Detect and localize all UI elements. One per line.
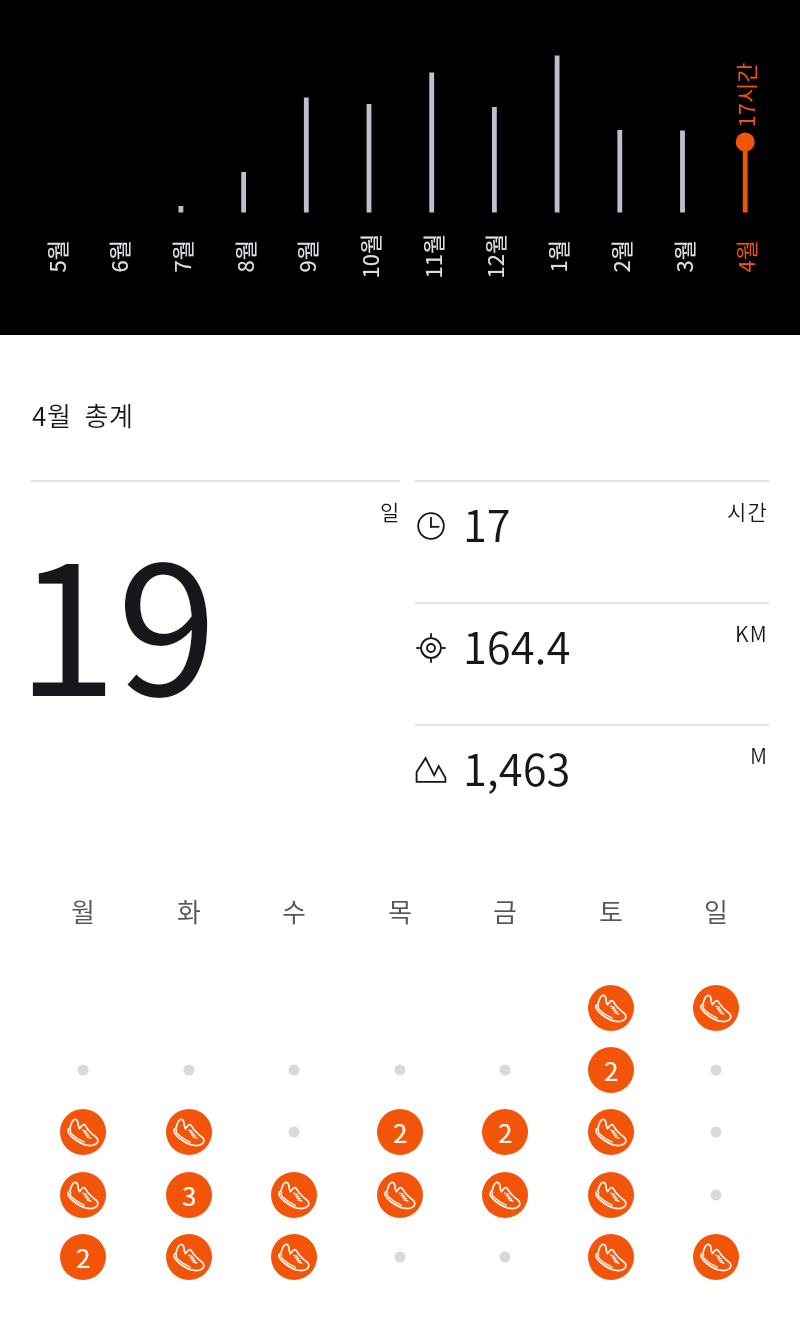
staticText: 164.4 (463, 614, 571, 676)
staticText: 2 (76, 1238, 91, 1276)
staticText: 일 (704, 892, 728, 930)
button[interactable]: 4월 총계 (18, 388, 148, 442)
staticText: 4월 총계 (32, 396, 134, 434)
button[interactable]: 1 activity (585, 982, 637, 1034)
staticText: 토 (599, 892, 623, 930)
staticText: 금 (493, 892, 517, 930)
button[interactable]: 1 activity (57, 1106, 109, 1158)
button[interactable]: 화 (157, 886, 221, 936)
button[interactable]: 1 activity (479, 1169, 531, 1221)
button[interactable]: 1 activity (163, 1106, 215, 1158)
staticText: 2 (393, 1113, 408, 1151)
button[interactable]: Rest day (374, 1044, 426, 1096)
button[interactable]: 1 activity (268, 1231, 320, 1283)
button[interactable]: 1 activity (57, 1169, 109, 1221)
staticText: 2 (604, 1051, 619, 1089)
staticText: 일 (380, 496, 400, 526)
button[interactable]: 1,463 (415, 726, 769, 845)
staticText: 1,463 (463, 736, 571, 798)
staticText: 시간 (727, 496, 769, 526)
staticText: KM (735, 618, 769, 648)
button[interactable]: 3 activities (163, 1169, 215, 1221)
button[interactable]: 목 (368, 886, 432, 936)
button[interactable]: Monthly hours chart (0, 0, 800, 335)
button[interactable]: 일 (684, 886, 748, 936)
button[interactable]: 164.4 (415, 604, 769, 723)
staticText: 3 (182, 1176, 197, 1214)
button[interactable]: Rest day (479, 1231, 531, 1283)
button[interactable]: 1 activity (268, 1169, 320, 1221)
button[interactable]: Rest day (268, 1044, 320, 1096)
button[interactable]: Rest day (57, 1044, 109, 1096)
button[interactable]: Rest day (374, 1231, 426, 1283)
button[interactable]: 17 (415, 482, 769, 601)
button[interactable]: 1 activity (585, 1106, 637, 1158)
button[interactable]: Rest day (690, 1169, 742, 1221)
button[interactable]: 1 activity (690, 982, 742, 1034)
button[interactable]: Rest day (690, 1106, 742, 1158)
button[interactable]: 1 activity (585, 1231, 637, 1283)
button[interactable]: 일 (31, 482, 400, 712)
button[interactable]: 2 activities (374, 1106, 426, 1158)
staticText: 2 (498, 1113, 513, 1151)
button[interactable]: Rest day (690, 1044, 742, 1096)
button[interactable]: 1 activity (585, 1169, 637, 1221)
staticText: 월 (71, 892, 95, 930)
button[interactable]: Rest day (268, 1106, 320, 1158)
button[interactable]: 월 (51, 886, 115, 936)
button[interactable]: Rest day (163, 1044, 215, 1096)
button[interactable]: 2 activities (57, 1231, 109, 1283)
button[interactable]: 2 activities (479, 1106, 531, 1158)
button[interactable]: Rest day (479, 1044, 531, 1096)
staticText: 목 (388, 892, 412, 930)
button[interactable]: 1 activity (690, 1231, 742, 1283)
button[interactable]: 1 activity (163, 1231, 215, 1283)
button[interactable]: 1 activity (374, 1169, 426, 1221)
button[interactable]: 2 activities (585, 1044, 637, 1096)
staticText: 수 (282, 892, 306, 930)
button[interactable]: 토 (579, 886, 643, 936)
staticText: 19 (17, 487, 217, 717)
staticText: 화 (177, 892, 201, 930)
button[interactable]: 금 (473, 886, 537, 936)
staticText: 17 (463, 492, 511, 554)
button[interactable]: 수 (262, 886, 326, 936)
staticText: M (750, 740, 769, 770)
